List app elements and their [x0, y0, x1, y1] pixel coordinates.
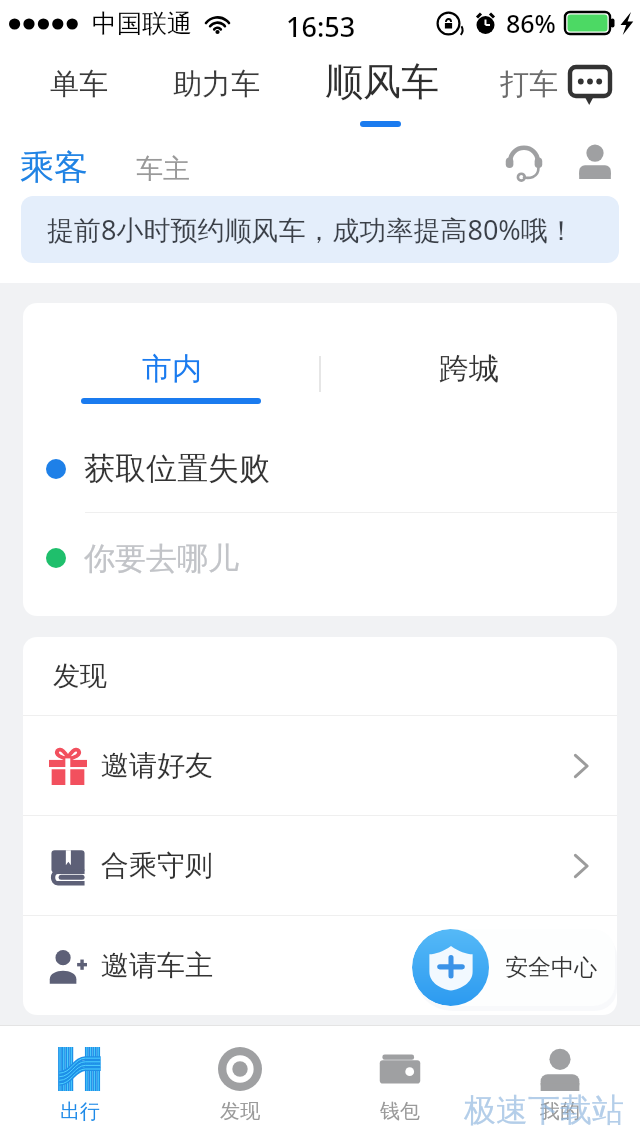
staticText: 市内 — [142, 350, 202, 388]
button[interactable]: 打车 — [492, 62, 566, 107]
staticText: 获取位置失败 — [84, 449, 270, 488]
staticText: 中国联通 — [92, 8, 192, 39]
button[interactable]: 提前8小时预约顺风车，成功率提高80%哦！ — [21, 196, 619, 263]
staticText: 我的 — [540, 1099, 580, 1124]
staticText: 助力车 — [173, 66, 260, 103]
button[interactable]: 你要去哪儿 — [23, 513, 617, 603]
staticText: 车主 — [136, 152, 190, 186]
staticText: 提前8小时预约顺风车，成功率提高80%哦！ — [47, 211, 575, 248]
staticText: 86% — [506, 6, 556, 40]
staticText: 钱包 — [380, 1099, 420, 1124]
button[interactable]: 助力车 — [165, 62, 268, 107]
staticText: 邀请车主 — [101, 948, 213, 983]
button[interactable]: 单车 — [42, 62, 116, 107]
staticText: 单车 — [50, 66, 108, 103]
staticText: 极速下载站 — [464, 1090, 624, 1130]
staticText: 乘客 — [20, 146, 88, 189]
staticText: 出行 — [60, 1099, 100, 1124]
staticText: 安全中心 — [505, 953, 597, 982]
button[interactable]: Messages — [563, 58, 617, 110]
button[interactable]: Customer service — [496, 134, 552, 190]
button[interactable]: Profile — [570, 136, 620, 186]
button[interactable]: 安全中心 — [412, 929, 615, 1006]
button[interactable]: 获取位置失败 — [23, 425, 617, 512]
staticText: 打车 — [500, 66, 558, 103]
staticText: 发现 — [220, 1099, 260, 1124]
button[interactable]: 车主 — [128, 144, 198, 194]
button[interactable]: 出行 — [0, 1026, 160, 1136]
button[interactable]: 市内 — [23, 303, 320, 403]
staticText: 邀请好友 — [101, 748, 213, 783]
button[interactable]: 钱包 — [320, 1026, 480, 1136]
staticText: 你要去哪儿 — [84, 539, 239, 578]
button[interactable]: 发现 — [160, 1026, 320, 1136]
staticText: 发现 — [53, 659, 107, 693]
staticText: 跨城 — [439, 350, 499, 388]
button[interactable]: 跨城 — [320, 303, 617, 403]
button[interactable]: 我的 — [480, 1026, 640, 1136]
button[interactable]: 乘客 — [12, 138, 96, 197]
button[interactable]: 合乘守则 — [23, 816, 617, 915]
button[interactable]: 顺风车 — [317, 54, 447, 110]
staticText: 16:53 — [286, 8, 356, 45]
staticText: 顺风车 — [325, 58, 439, 106]
button[interactable]: 邀请车主 — [23, 916, 617, 1015]
button[interactable]: 邀请好友 — [23, 716, 617, 815]
staticText: 合乘守则 — [101, 848, 213, 883]
